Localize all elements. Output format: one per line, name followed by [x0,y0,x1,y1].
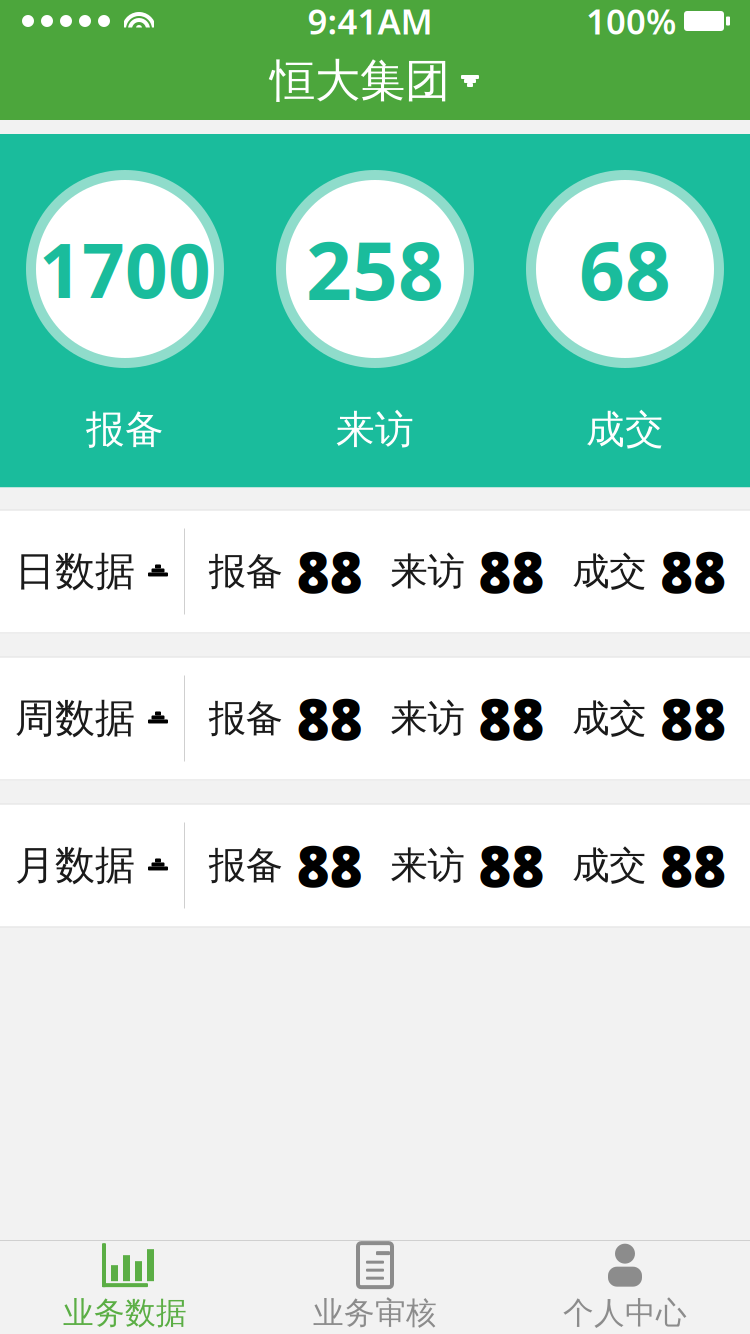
staticText: 68 [579,216,671,322]
staticText: 报备 [209,549,283,594]
staticText: 88 [297,828,363,903]
staticText: 个人中心 [563,1294,687,1332]
staticText: 88 [297,681,363,756]
staticText: 周数据 [15,694,135,743]
staticText: 成交 [572,696,646,741]
staticText: 258 [306,216,444,322]
staticText: 88 [478,681,544,756]
button[interactable]: 业务数据 [0,1240,250,1334]
staticText: 88 [660,534,726,609]
staticText: 来访 [390,696,464,741]
button[interactable]: 周数据 [0,656,750,780]
staticText: 来访 [390,843,464,888]
staticText: 100% [586,0,676,44]
staticText: 9:41AM [307,0,432,44]
staticText: 成交 [572,843,646,888]
staticText: 报备 [209,843,283,888]
staticText: 报备 [209,696,283,741]
staticText: 恒大集团 [270,53,450,109]
staticText: 1700 [39,219,211,319]
staticText: 88 [478,828,544,903]
staticText: 报备 [86,406,164,453]
button[interactable]: 恒大集团 [0,42,750,120]
staticText: 业务数据 [63,1294,187,1332]
staticText: 88 [660,681,726,756]
button[interactable]: 月数据 [0,803,750,927]
staticText: 月数据 [15,841,135,890]
staticText: 88 [660,828,726,903]
staticText: 成交 [572,549,646,594]
staticText: 来访 [390,549,464,594]
button[interactable]: 业务审核 [250,1240,500,1334]
staticText: 88 [478,534,544,609]
staticText: 成交 [586,406,664,453]
button[interactable]: 日数据 [0,509,750,633]
staticText: 业务审核 [313,1294,437,1332]
staticText: 来访 [336,406,414,453]
button[interactable]: 个人中心 [500,1240,750,1334]
staticText: 88 [297,534,363,609]
staticText: 日数据 [15,547,135,596]
